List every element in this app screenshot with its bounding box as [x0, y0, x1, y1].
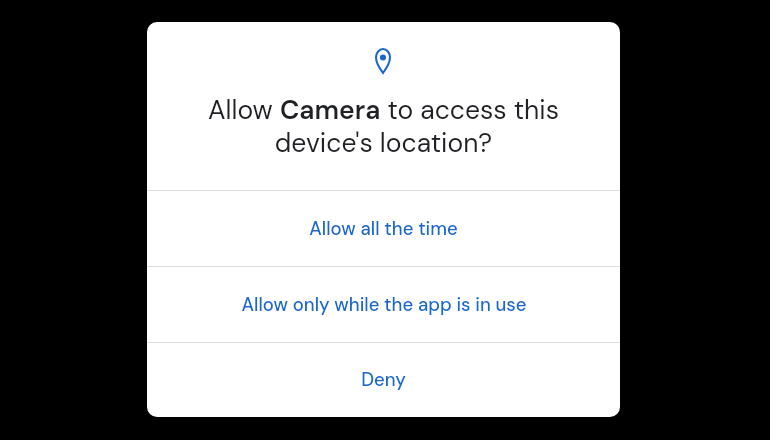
other: Location: [375, 48, 391, 74]
button[interactable]: Allow all the time: [147, 191, 620, 266]
staticText: Allow all the time: [309, 217, 458, 241]
staticText: Deny: [361, 368, 406, 392]
button[interactable]: Deny: [147, 343, 620, 417]
staticText: Allow Camera to access this device's loc…: [165, 93, 602, 160]
button[interactable]: Allow only while the app is in use: [147, 267, 620, 342]
staticText: Allow only while the app is in use: [241, 293, 527, 317]
